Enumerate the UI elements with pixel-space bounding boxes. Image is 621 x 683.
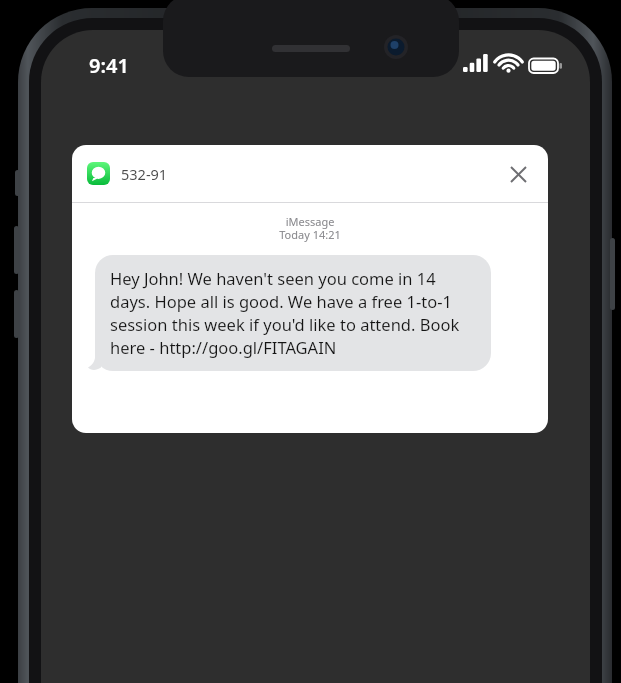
- staticText: iMessage Today 14:21: [72, 214, 548, 242]
- button[interactable]: Close notification: [501, 157, 535, 191]
- staticText: Hey John! We haven't seen you come in 14…: [110, 267, 476, 359]
- button[interactable]: 532-91: [72, 145, 548, 433]
- staticText: 9:41: [89, 52, 129, 79]
- button[interactable]: Hey John! We haven't seen you come in 14…: [95, 255, 491, 371]
- staticText: 532-91: [121, 164, 168, 184]
